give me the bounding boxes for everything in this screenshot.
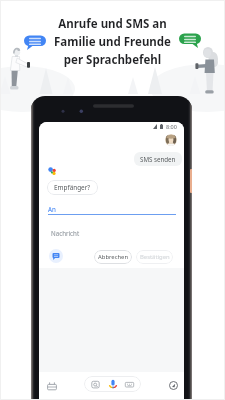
staticText: Nachricht	[51, 229, 80, 237]
staticText: Anrufe und SMS an Familie und Freunde pe…	[54, 16, 171, 67]
staticText: Abbrechen	[98, 253, 129, 261]
button[interactable]: Bestätigen	[136, 250, 173, 264]
button[interactable]: Explore	[169, 381, 178, 390]
staticText: SMS senden	[140, 155, 176, 163]
button[interactable]: Gallery	[47, 381, 57, 391]
button[interactable]: Abbrechen	[94, 250, 132, 264]
button[interactable]: Profile	[165, 134, 177, 146]
button[interactable]: Lens	[91, 380, 100, 389]
staticText: An	[48, 205, 56, 213]
button[interactable]: SMS senden	[134, 152, 182, 166]
button[interactable]: Keyboard	[125, 380, 134, 389]
staticText: Empfänger?	[54, 183, 91, 192]
staticText: 8:00	[166, 123, 177, 130]
button[interactable]: Voice search	[108, 379, 118, 389]
button[interactable]: Empfänger?	[47, 180, 98, 195]
staticText: Bestätigen	[140, 253, 170, 261]
button[interactable]: Message type	[49, 249, 63, 263]
